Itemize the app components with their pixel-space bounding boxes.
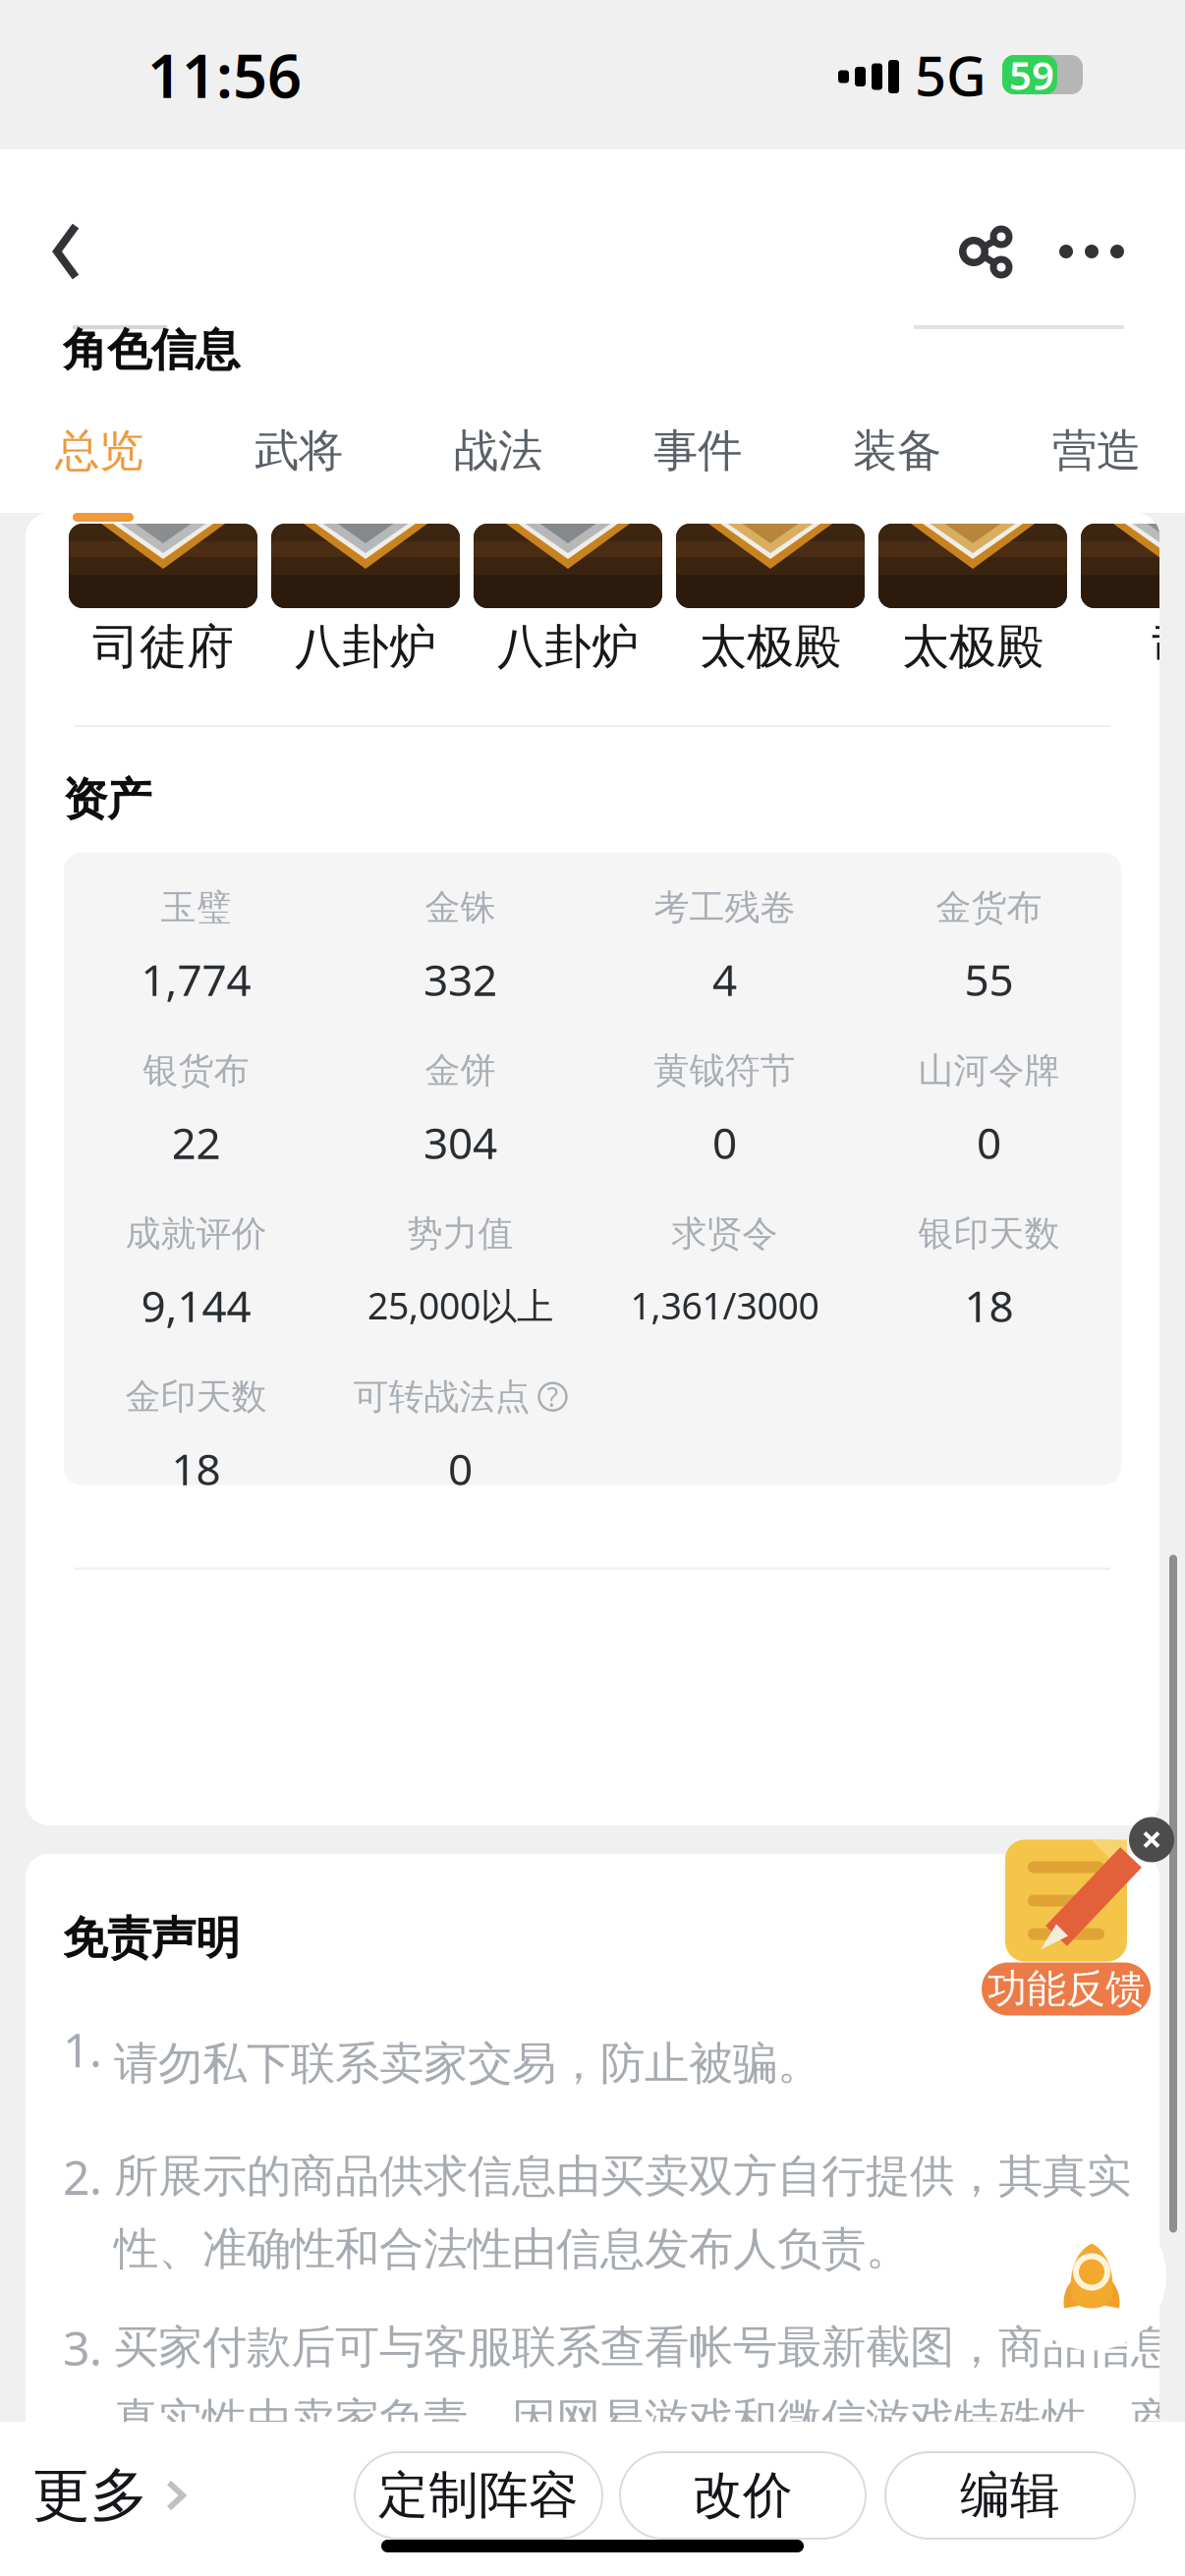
staticText: 18 xyxy=(171,1440,221,1497)
staticText: 买家付款后可与客服联系查看帐号最新截图，商品信息 xyxy=(114,2320,1175,2375)
staticText: 59 xyxy=(1009,49,1054,101)
button[interactable]: 事件 xyxy=(653,420,853,482)
staticText: 304 xyxy=(423,1114,497,1171)
staticText: 可转战法点 xyxy=(353,1375,530,1418)
button[interactable]: 武将 xyxy=(254,420,454,482)
button[interactable]: 客服 xyxy=(1017,2201,1166,2351)
button[interactable]: 总览 xyxy=(55,420,254,482)
button[interactable]: 装备 xyxy=(853,420,1052,482)
staticText: 请勿私下联系卖家交易，防止被骗。 xyxy=(114,2036,821,2091)
staticText: 总览 xyxy=(55,424,143,478)
button[interactable]: 编辑 xyxy=(885,2452,1135,2539)
staticText: 太极殿 xyxy=(902,618,1044,676)
staticText: 5G xyxy=(915,38,987,111)
staticText: 18 xyxy=(964,1277,1014,1334)
staticText: 角色信息 xyxy=(63,323,240,378)
staticText: 黄钺符节 xyxy=(654,1049,795,1092)
staticText: 考工残卷 xyxy=(654,886,795,929)
button[interactable]: 更多 xyxy=(0,2452,229,2539)
staticText: 3. xyxy=(63,2316,102,2379)
staticText: 真实性由卖家负责。因网易游戏和微信游戏特殊性，商 xyxy=(114,2393,1175,2447)
staticText: 玉璧 xyxy=(161,886,231,929)
staticText: 22 xyxy=(171,1114,221,1171)
button[interactable]: 营造 xyxy=(1052,420,1185,482)
staticText: 1,774 xyxy=(141,950,251,1008)
staticText: 银印天数 xyxy=(918,1212,1060,1255)
button[interactable]: 分享 xyxy=(934,206,1041,297)
staticText: 太极殿 xyxy=(700,618,841,676)
button[interactable]: 定制阵容 xyxy=(355,2452,602,2539)
staticText: 战法 xyxy=(454,424,542,478)
staticText: 55 xyxy=(964,950,1014,1008)
staticText: 0 xyxy=(712,1114,737,1171)
staticText: 八卦炉 xyxy=(497,618,639,676)
staticText: 332 xyxy=(423,950,497,1008)
staticText: 性、准确性和合法性由信息发布人负责。 xyxy=(114,2222,910,2276)
staticText: 资产 xyxy=(63,772,151,827)
staticText: 品信息由卖家实时截图提供。 xyxy=(114,2465,689,2520)
staticText: 事件 xyxy=(653,424,742,478)
button[interactable]: 关闭 xyxy=(1127,1815,1176,1864)
staticText: 0 xyxy=(977,1114,1001,1171)
button[interactable]: 改价 xyxy=(620,2452,866,2539)
staticText: 编辑 xyxy=(960,2465,1060,2526)
staticText: 营造 xyxy=(1052,424,1141,478)
button[interactable]: 功能反馈 xyxy=(973,1867,1159,2044)
staticText: 武将 xyxy=(254,424,343,478)
staticText: 金铢 xyxy=(425,886,496,929)
staticText: 0 xyxy=(448,1440,473,1497)
staticText: 4 xyxy=(712,950,737,1008)
staticText: 1,361/3000 xyxy=(630,1281,819,1330)
button[interactable]: 更多选项 xyxy=(1041,206,1143,297)
staticText: 9,144 xyxy=(141,1277,251,1334)
staticText: 1. xyxy=(63,2018,102,2080)
staticText: 2. xyxy=(63,2145,102,2208)
staticText: 25,000以上 xyxy=(367,1281,553,1330)
staticText: 成就评价 xyxy=(125,1212,267,1255)
staticText: 所展示的商品供求信息由买卖双方自行提供，其真实 xyxy=(114,2149,1131,2204)
staticText: 金货布 xyxy=(936,886,1042,929)
staticText: 山河令牌 xyxy=(918,1049,1060,1092)
staticText: 司徒府 xyxy=(92,618,234,676)
staticText: 免责声明 xyxy=(63,1911,240,1966)
staticText: 更多 xyxy=(32,2460,148,2531)
staticText: 装备 xyxy=(853,424,941,478)
button[interactable]: 返回 xyxy=(20,206,114,297)
staticText: 11:56 xyxy=(147,35,302,115)
staticText: 司 xyxy=(1152,618,1185,676)
staticText: 金印天数 xyxy=(125,1375,267,1418)
staticText: 求贤令 xyxy=(672,1212,778,1255)
staticText: 势力值 xyxy=(407,1212,513,1255)
staticText: 八卦炉 xyxy=(295,618,436,676)
staticText: 改价 xyxy=(693,2465,793,2526)
staticText: 功能反馈 xyxy=(987,1965,1145,2013)
staticText: 金饼 xyxy=(425,1049,496,1092)
staticText: 定制阵容 xyxy=(378,2465,579,2526)
staticText: 银货布 xyxy=(143,1049,249,1092)
button[interactable]: 战法 xyxy=(454,420,653,482)
staticText: ? xyxy=(547,1379,559,1414)
